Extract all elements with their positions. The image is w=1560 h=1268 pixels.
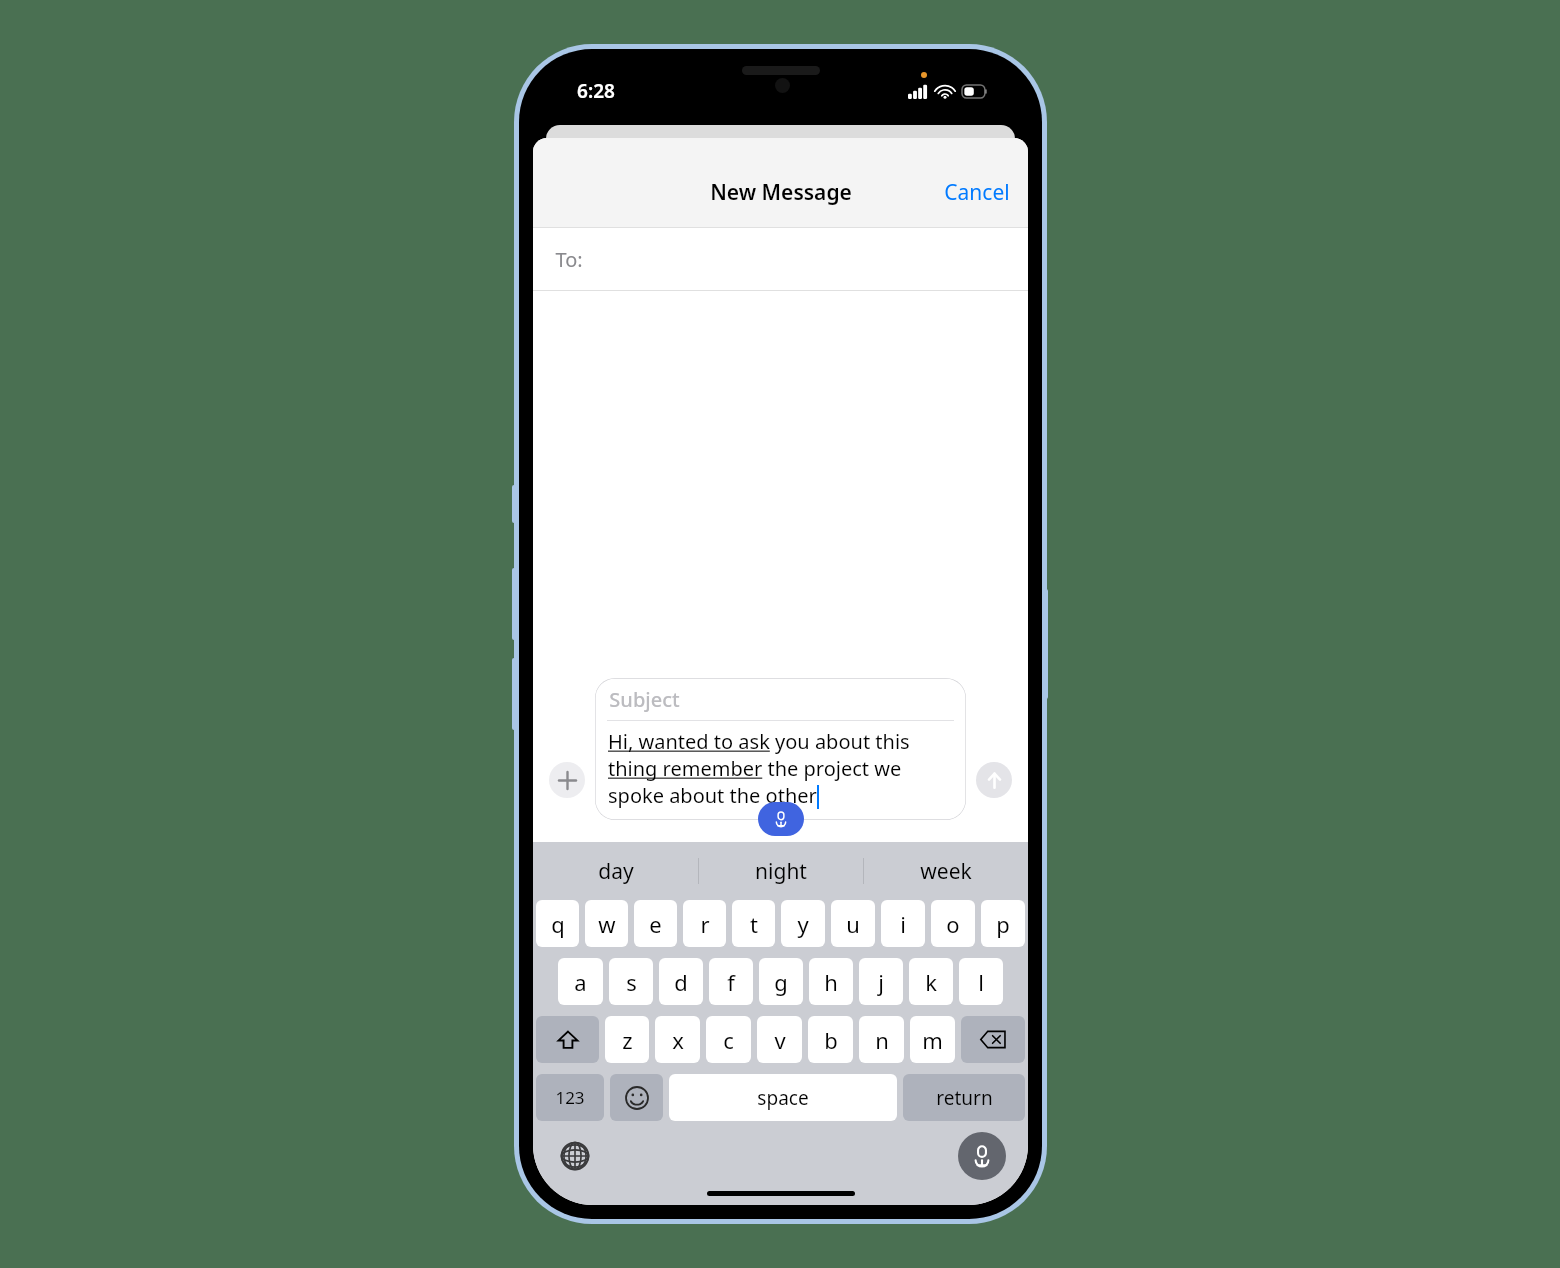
staticText: r: [700, 909, 710, 939]
button[interactable]: r: [683, 900, 726, 947]
button[interactable]: Dictation: [958, 1132, 1006, 1180]
staticText: Hi, wanted to ask you about this: [608, 728, 910, 755]
button[interactable]: Send: [976, 762, 1012, 798]
staticText: i: [900, 909, 906, 939]
button[interactable]: 123: [536, 1074, 604, 1121]
button[interactable]: space: [669, 1074, 897, 1121]
button[interactable]: l: [959, 958, 1003, 1005]
button[interactable]: d: [659, 958, 703, 1005]
staticText: 123: [555, 1086, 585, 1109]
button[interactable]: s: [609, 958, 653, 1005]
button[interactable]: z: [605, 1016, 649, 1063]
button[interactable]: q: [536, 900, 579, 947]
button[interactable]: n: [859, 1016, 904, 1063]
button[interactable]: e: [634, 900, 677, 947]
staticText: p: [996, 909, 1010, 939]
staticText: return: [936, 1085, 993, 1111]
button[interactable]: Delete: [961, 1016, 1025, 1063]
staticText: night: [755, 857, 807, 886]
staticText: day: [598, 857, 634, 886]
staticText: thing remember the project we: [608, 755, 902, 782]
staticText: j: [878, 967, 884, 997]
button[interactable]: Change keyboard: [555, 1136, 595, 1176]
staticText: Cancel: [944, 178, 1010, 207]
button[interactable]: b: [808, 1016, 853, 1063]
button[interactable]: week: [864, 842, 1028, 900]
button[interactable]: y: [781, 900, 825, 947]
button[interactable]: Subject: [595, 678, 966, 820]
staticText: 6:28: [577, 78, 615, 104]
staticText: z: [622, 1025, 633, 1055]
button[interactable]: g: [759, 958, 803, 1005]
staticText: v: [774, 1025, 786, 1055]
staticText: x: [672, 1025, 684, 1055]
button[interactable]: f: [709, 958, 753, 1005]
button[interactable]: o: [931, 900, 975, 947]
button[interactable]: p: [981, 900, 1025, 947]
staticText: n: [875, 1025, 889, 1055]
staticText: b: [824, 1025, 838, 1055]
staticText: o: [946, 909, 960, 939]
button[interactable]: night: [699, 842, 863, 900]
staticText: w: [598, 909, 616, 939]
staticText: New Message: [710, 178, 852, 207]
button[interactable]: Shift: [536, 1016, 599, 1063]
button[interactable]: j: [859, 958, 903, 1005]
staticText: c: [723, 1025, 734, 1055]
staticText: To:: [555, 246, 583, 273]
button[interactable]: c: [706, 1016, 751, 1063]
staticText: h: [824, 967, 838, 997]
staticText: k: [925, 967, 937, 997]
button[interactable]: i: [881, 900, 925, 947]
button[interactable]: m: [910, 1016, 955, 1063]
button[interactable]: x: [655, 1016, 700, 1063]
staticText: e: [649, 909, 662, 939]
button[interactable]: a: [558, 958, 603, 1005]
button[interactable]: Cancel: [926, 170, 1028, 215]
button[interactable]: t: [732, 900, 775, 947]
staticText: q: [551, 909, 565, 939]
staticText: m: [922, 1025, 943, 1055]
staticText: t: [750, 909, 758, 939]
staticText: l: [978, 967, 984, 997]
button[interactable]: u: [831, 900, 875, 947]
staticText: d: [674, 967, 688, 997]
staticText: s: [626, 967, 637, 997]
button[interactable]: return: [903, 1074, 1025, 1121]
staticText: Subject: [609, 686, 680, 713]
button[interactable]: h: [809, 958, 853, 1005]
staticText: y: [797, 909, 809, 939]
button[interactable]: Emoji: [610, 1074, 663, 1121]
staticText: f: [727, 967, 735, 997]
staticText: week: [920, 857, 972, 886]
staticText: spoke about the other: [608, 782, 817, 809]
staticText: space: [757, 1085, 809, 1111]
staticText: a: [574, 967, 587, 997]
button[interactable]: To:: [533, 228, 1028, 290]
button[interactable]: Dictate: [758, 802, 804, 836]
button[interactable]: Add attachment: [549, 762, 585, 798]
staticText: u: [846, 909, 860, 939]
button[interactable]: day: [533, 842, 698, 900]
button[interactable]: k: [909, 958, 953, 1005]
button[interactable]: v: [757, 1016, 802, 1063]
staticText: g: [774, 967, 788, 997]
button[interactable]: w: [585, 900, 628, 947]
